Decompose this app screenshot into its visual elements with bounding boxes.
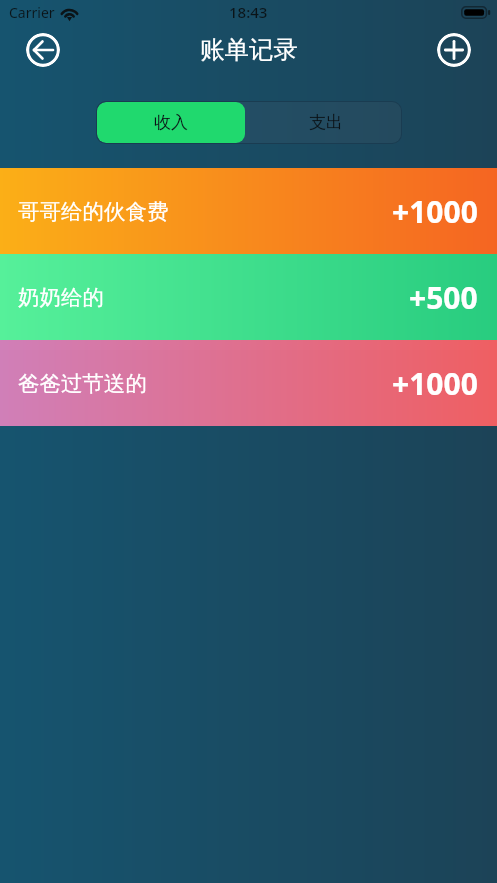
button[interactable]: Back [26, 33, 60, 67]
button[interactable]: 收入 [97, 102, 245, 143]
staticText: 账单记录 [200, 34, 298, 65]
staticText: +1000 [392, 191, 478, 232]
button[interactable]: Add [437, 33, 471, 67]
staticText: 支出 [309, 112, 343, 133]
button[interactable]: 哥哥给的伙食费 [0, 168, 497, 254]
button[interactable]: 爸爸过节送的 [0, 340, 497, 426]
staticText: 18:43 [229, 2, 268, 22]
button[interactable]: 奶奶给的 [0, 254, 497, 340]
button[interactable]: 支出 [245, 102, 401, 143]
staticText: Carrier [9, 3, 55, 22]
staticText: 爸爸过节送的 [18, 370, 147, 397]
staticText: +1000 [392, 363, 478, 404]
staticText: 收入 [154, 112, 188, 133]
staticText: 哥哥给的伙食费 [18, 198, 169, 225]
staticText: 奶奶给的 [18, 284, 104, 311]
staticText: +500 [409, 277, 478, 318]
